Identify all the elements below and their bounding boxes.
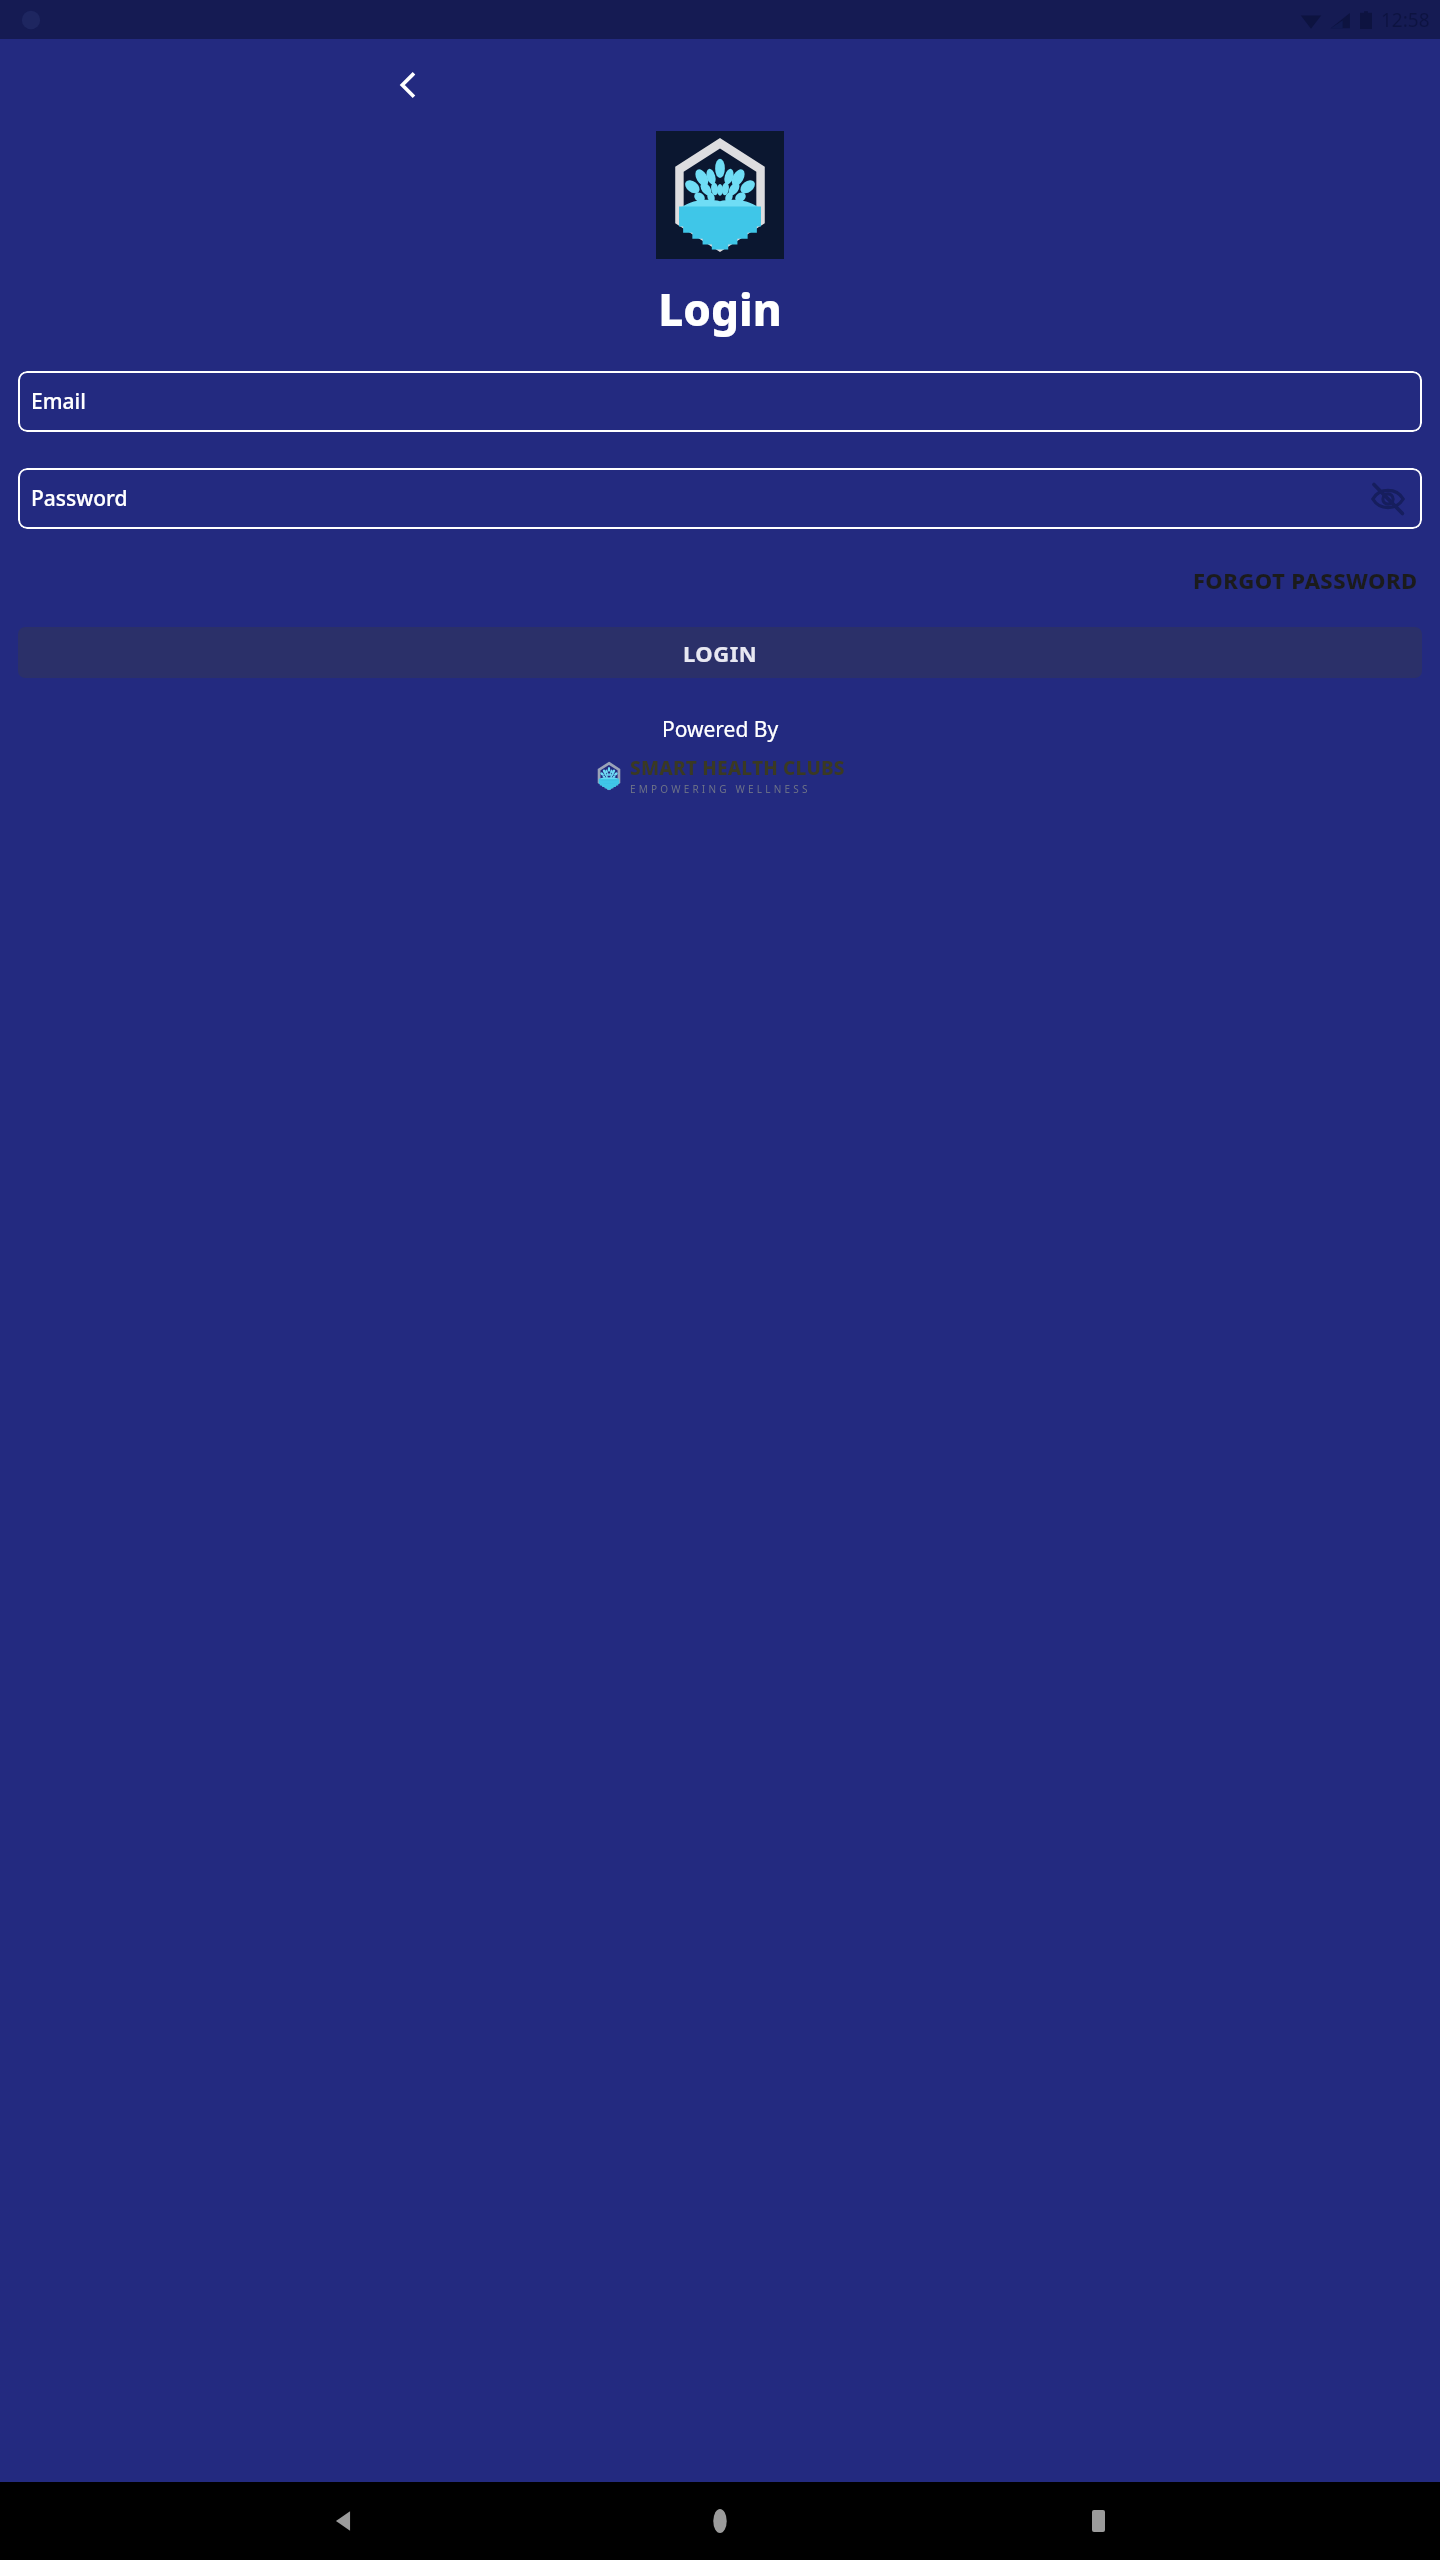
button[interactable]: Password <box>18 468 1422 529</box>
staticText: Login <box>658 279 782 339</box>
button[interactable]: Home <box>685 2486 755 2556</box>
button[interactable]: LOGIN <box>18 627 1422 678</box>
button[interactable]: Recent apps <box>1063 2486 1133 2556</box>
staticText: Powered By <box>662 715 779 744</box>
staticText: LOGIN <box>683 638 758 668</box>
button[interactable]: Email <box>18 371 1422 432</box>
staticText: EMPOWERING WELLNESS <box>630 782 811 796</box>
button[interactable]: Back <box>308 2486 378 2556</box>
staticText: Password <box>31 484 128 513</box>
button[interactable]: FORGOT PASSWORD <box>1189 559 1422 601</box>
button[interactable]: Back <box>376 53 440 117</box>
other: Smart Health Clubs logo <box>596 763 622 789</box>
staticText: 12:58 <box>1381 7 1430 33</box>
button[interactable]: Show password <box>1367 478 1409 520</box>
staticText: FORGOT PASSWORD <box>1193 565 1418 595</box>
staticText: SMART HEALTH CLUBS <box>630 755 845 781</box>
staticText: Email <box>31 387 86 416</box>
